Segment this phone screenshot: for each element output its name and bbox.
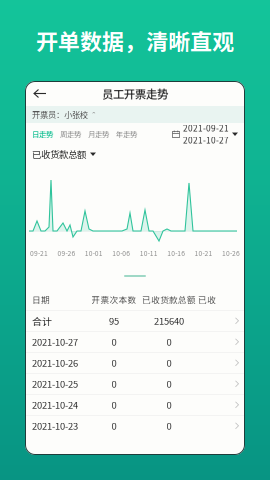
staticText: 10-21 xyxy=(195,248,213,258)
staticText: 0 xyxy=(166,419,171,432)
staticText: 合计 xyxy=(32,314,52,328)
staticText: 0 xyxy=(166,356,171,369)
staticText: 0 xyxy=(111,419,116,432)
staticText: 年走势 xyxy=(116,129,137,139)
staticText: 周走势 xyxy=(60,129,81,139)
staticText: 员工开票走势 xyxy=(102,85,168,102)
staticText: 0 xyxy=(166,398,171,411)
staticText: 10-01 xyxy=(85,248,103,258)
staticText: 0 xyxy=(111,398,116,411)
staticText: 215640 xyxy=(154,314,184,327)
staticText: 已收 xyxy=(198,293,216,306)
button[interactable]: 日走势 xyxy=(32,129,53,139)
button[interactable]: 2021-10-26 xyxy=(25,352,245,373)
staticText: 2021-10-24 xyxy=(32,398,78,411)
staticText: 开票次本数 xyxy=(91,293,136,306)
staticText: 开单数据，清晰直观 xyxy=(36,25,234,56)
button[interactable]: 月走势 xyxy=(81,129,109,139)
staticText: 已收货款总额 xyxy=(32,147,86,161)
staticText: 09-26 xyxy=(57,248,75,258)
staticText: 2021-10-25 xyxy=(32,377,78,390)
staticText: 日走势 xyxy=(32,129,53,139)
button[interactable]: 2021-10-25 xyxy=(25,373,245,394)
staticText: 开票员：小张校 xyxy=(32,108,88,120)
staticText: ⌃ xyxy=(91,111,97,118)
staticText: 0 xyxy=(111,335,116,348)
staticText: 0 xyxy=(166,377,171,390)
staticText: 2021-10-27 xyxy=(183,134,229,146)
staticText: 2021-10-27 xyxy=(32,335,78,348)
staticText: 2021-10-23 xyxy=(32,419,78,432)
button[interactable]: 2021-10-27 xyxy=(25,331,245,352)
button[interactable]: 年走势 xyxy=(109,129,137,139)
button[interactable]: 2021-09-21 xyxy=(172,122,238,146)
staticText: 日期 xyxy=(32,293,50,306)
staticText: 95 xyxy=(109,314,119,327)
button[interactable]: 2021-10-24 xyxy=(25,394,245,415)
staticText: 2021-09-21 xyxy=(183,122,229,134)
staticText: 0 xyxy=(166,335,171,348)
staticText: 10-11 xyxy=(140,248,158,258)
button[interactable]: Back xyxy=(33,86,47,100)
staticText: 月走势 xyxy=(88,129,109,139)
staticText: 10-16 xyxy=(167,248,185,258)
staticText: 2021-10-26 xyxy=(32,356,78,369)
button[interactable]: 合计 xyxy=(25,310,245,331)
button[interactable]: 2021-10-23 xyxy=(25,415,245,436)
staticText: 已收货款总额 xyxy=(142,293,196,306)
staticText: 0 xyxy=(111,377,116,390)
staticText: 10-26 xyxy=(222,248,240,258)
staticText: 09-21 xyxy=(30,248,48,258)
staticText: 0 xyxy=(111,356,116,369)
staticText: 10-06 xyxy=(112,248,130,258)
button[interactable]: 周走势 xyxy=(53,129,81,139)
